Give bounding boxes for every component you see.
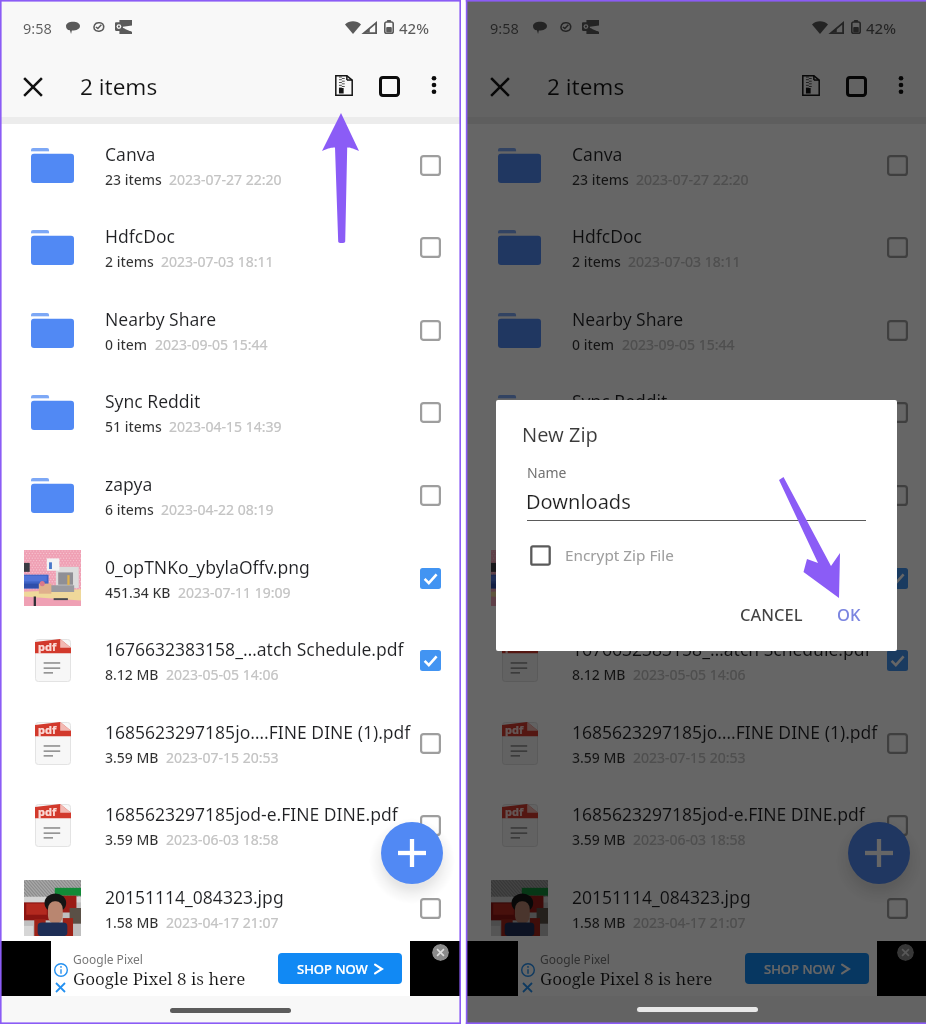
button[interactable]: CANCEL [728, 597, 815, 631]
staticText: 2023-07-27 22:20 [169, 170, 282, 189]
button[interactable]: Select 0_opTNKo_ybylaOffv.png [408, 557, 452, 599]
button[interactable]: pdf [467, 786, 926, 869]
staticText: New Zip [522, 421, 598, 448]
button[interactable]: pdf [0, 704, 461, 787]
button[interactable]: Canva [467, 126, 926, 209]
button[interactable]: Create zip [791, 63, 831, 107]
staticText: 2023-07-15 20:53 [633, 748, 746, 767]
staticText: Canva [572, 142, 623, 166]
button[interactable]: Select 20151114_084323.jpg [408, 887, 452, 929]
button[interactable]: Select 1676632383158_…atch Schedule.pdf [408, 639, 452, 681]
button[interactable]: 20151114_084323.jpg [0, 869, 461, 941]
button[interactable]: Select all [369, 64, 409, 108]
staticText: Google Pixel 8 is here [540, 967, 713, 990]
staticText: Nearby Share [105, 307, 217, 331]
button[interactable]: Select 1685623297185jo….FINE DINE (1).pd… [408, 722, 452, 764]
button[interactable]: Select HdfcDoc [875, 226, 919, 268]
staticText: zapya [572, 472, 620, 496]
staticText: pdf [38, 722, 57, 737]
button[interactable]: Sync Reddit [0, 373, 461, 456]
button[interactable]: Nearby Share [467, 291, 926, 374]
staticText: 20151114_084323.jpg [572, 885, 751, 909]
button[interactable]: Select 1685623297185jo….FINE DINE (1).pd… [875, 722, 919, 764]
button[interactable]: zapya [0, 456, 461, 539]
button[interactable]: SHOP NOW [278, 953, 402, 984]
button[interactable]: 0_opTNKo_ybylaOffv.png [467, 539, 926, 622]
button[interactable]: SHOP NOW [745, 953, 869, 984]
button[interactable]: More options [881, 63, 921, 107]
staticText: 8.12 MB [105, 665, 159, 684]
button[interactable]: Select 1676632383158_…atch Schedule.pdf [875, 639, 919, 681]
button[interactable]: pdf [0, 621, 461, 704]
staticText: 3.59 MB [572, 748, 626, 767]
button[interactable]: Add [848, 822, 910, 884]
button[interactable]: Select Canva [408, 144, 452, 186]
button[interactable]: Sync Reddit [467, 373, 926, 456]
staticText: 2023-09-05 15:44 [155, 335, 268, 354]
button[interactable]: Select Nearby Share [875, 309, 919, 351]
staticText: 6 items [105, 500, 154, 519]
button[interactable]: OK [825, 597, 873, 631]
button[interactable]: Close ad [432, 944, 449, 961]
staticText: zapya [105, 472, 153, 496]
staticText: 9:58 [490, 18, 519, 38]
button[interactable]: pdf [467, 704, 926, 787]
staticText: Sync Reddit [572, 389, 668, 413]
staticText: 2023-07-03 18:11 [161, 252, 274, 271]
staticText: 0 item [105, 335, 148, 354]
button[interactable]: Select zapya [408, 474, 452, 516]
button[interactable]: Select 20151114_084323.jpg [875, 887, 919, 929]
button[interactable]: Dismiss ad [55, 982, 66, 993]
button[interactable]: Select 1685623297185jod-e.FINE DINE.pdf [875, 804, 919, 846]
button[interactable]: Canva [0, 126, 461, 209]
staticText: pdf [505, 722, 524, 737]
staticText: pdf [38, 639, 57, 654]
button[interactable]: 20151114_084323.jpg [467, 869, 926, 941]
staticText: 1685623297185jo….FINE DINE (1).pdf [572, 720, 878, 744]
button[interactable]: More options [414, 63, 454, 107]
staticText: OK [837, 603, 861, 625]
button[interactable]: Close [479, 66, 521, 108]
button[interactable]: pdf [467, 621, 926, 704]
staticText: HdfcDoc [572, 224, 642, 248]
button[interactable]: HdfcDoc [0, 208, 461, 291]
button[interactable]: Encrypt Zip File [530, 542, 674, 568]
button[interactable]: Select Canva [875, 144, 919, 186]
staticText: 2023-07-15 20:53 [166, 748, 279, 767]
staticText: 2023-05-05 14:06 [633, 665, 746, 684]
button[interactable]: Select all [836, 64, 876, 108]
button[interactable]: zapya [467, 456, 926, 539]
button[interactable]: Add [381, 822, 443, 884]
staticText: 6 items [572, 500, 621, 519]
button[interactable]: Select 0_opTNKo_ybylaOffv.png [875, 557, 919, 599]
button[interactable]: Select 1685623297185jod-e.FINE DINE.pdf [408, 804, 452, 846]
staticText: 1685623297185jod-e.FINE DINE.pdf [105, 802, 398, 826]
button[interactable]: 0_opTNKo_ybylaOffv.png [0, 539, 461, 622]
staticText: 0 item [572, 335, 615, 354]
button[interactable]: Dismiss ad [522, 982, 533, 993]
button[interactable]: Create zip [324, 63, 364, 107]
button[interactable]: HdfcDoc [467, 208, 926, 291]
button[interactable]: Nearby Share [0, 291, 461, 374]
staticText: 2023-09-05 15:44 [622, 335, 735, 354]
staticText: 2023-05-05 14:06 [166, 665, 279, 684]
button[interactable]: pdf [0, 786, 461, 869]
staticText: Canva [105, 142, 156, 166]
staticText: 1685623297185jo….FINE DINE (1).pdf [105, 720, 411, 744]
button[interactable]: Select Sync Reddit [408, 391, 452, 433]
staticText: 2023-04-17 21:07 [166, 913, 279, 932]
staticText: 2023-04-15 14:39 [169, 417, 282, 436]
staticText: 51 items [105, 417, 162, 436]
button[interactable]: Select Sync Reddit [875, 391, 919, 433]
button[interactable]: Close [12, 66, 54, 108]
staticText: Google Pixel [73, 951, 143, 967]
button[interactable]: Select HdfcDoc [408, 226, 452, 268]
staticText: SHOP NOW [297, 960, 368, 978]
button[interactable]: Ad information [521, 963, 535, 977]
button[interactable]: Close ad [897, 944, 914, 961]
button[interactable]: Ad information [54, 963, 68, 977]
button[interactable]: Select Nearby Share [408, 309, 452, 351]
button[interactable]: Select zapya [875, 474, 919, 516]
